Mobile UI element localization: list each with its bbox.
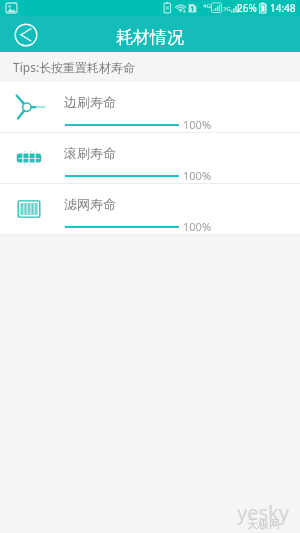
staticText: 滤网寿命 — [64, 196, 116, 212]
staticText: 3G — [223, 5, 231, 13]
staticText: 100% — [183, 168, 212, 183]
staticText: yesky — [237, 499, 289, 526]
button[interactable]: 边刷寿命 — [0, 82, 300, 132]
staticText: 天极网 — [247, 517, 280, 531]
button[interactable]: Back — [13, 22, 39, 48]
staticText: 100% — [183, 219, 212, 234]
staticText: 26% — [237, 1, 257, 15]
staticText: 边刷寿命 — [64, 94, 116, 110]
staticText: Tips:长按重置耗材寿命 — [13, 59, 136, 75]
staticText: 100% — [183, 117, 212, 132]
staticText: 耗材情况 — [116, 27, 184, 48]
button[interactable]: 滤网寿命 — [0, 184, 300, 234]
staticText: 滚刷寿命 — [64, 145, 116, 161]
staticText: 14:48 — [270, 1, 296, 15]
staticText: 4G — [203, 2, 211, 10]
button[interactable]: 滚刷寿命 — [0, 133, 300, 183]
